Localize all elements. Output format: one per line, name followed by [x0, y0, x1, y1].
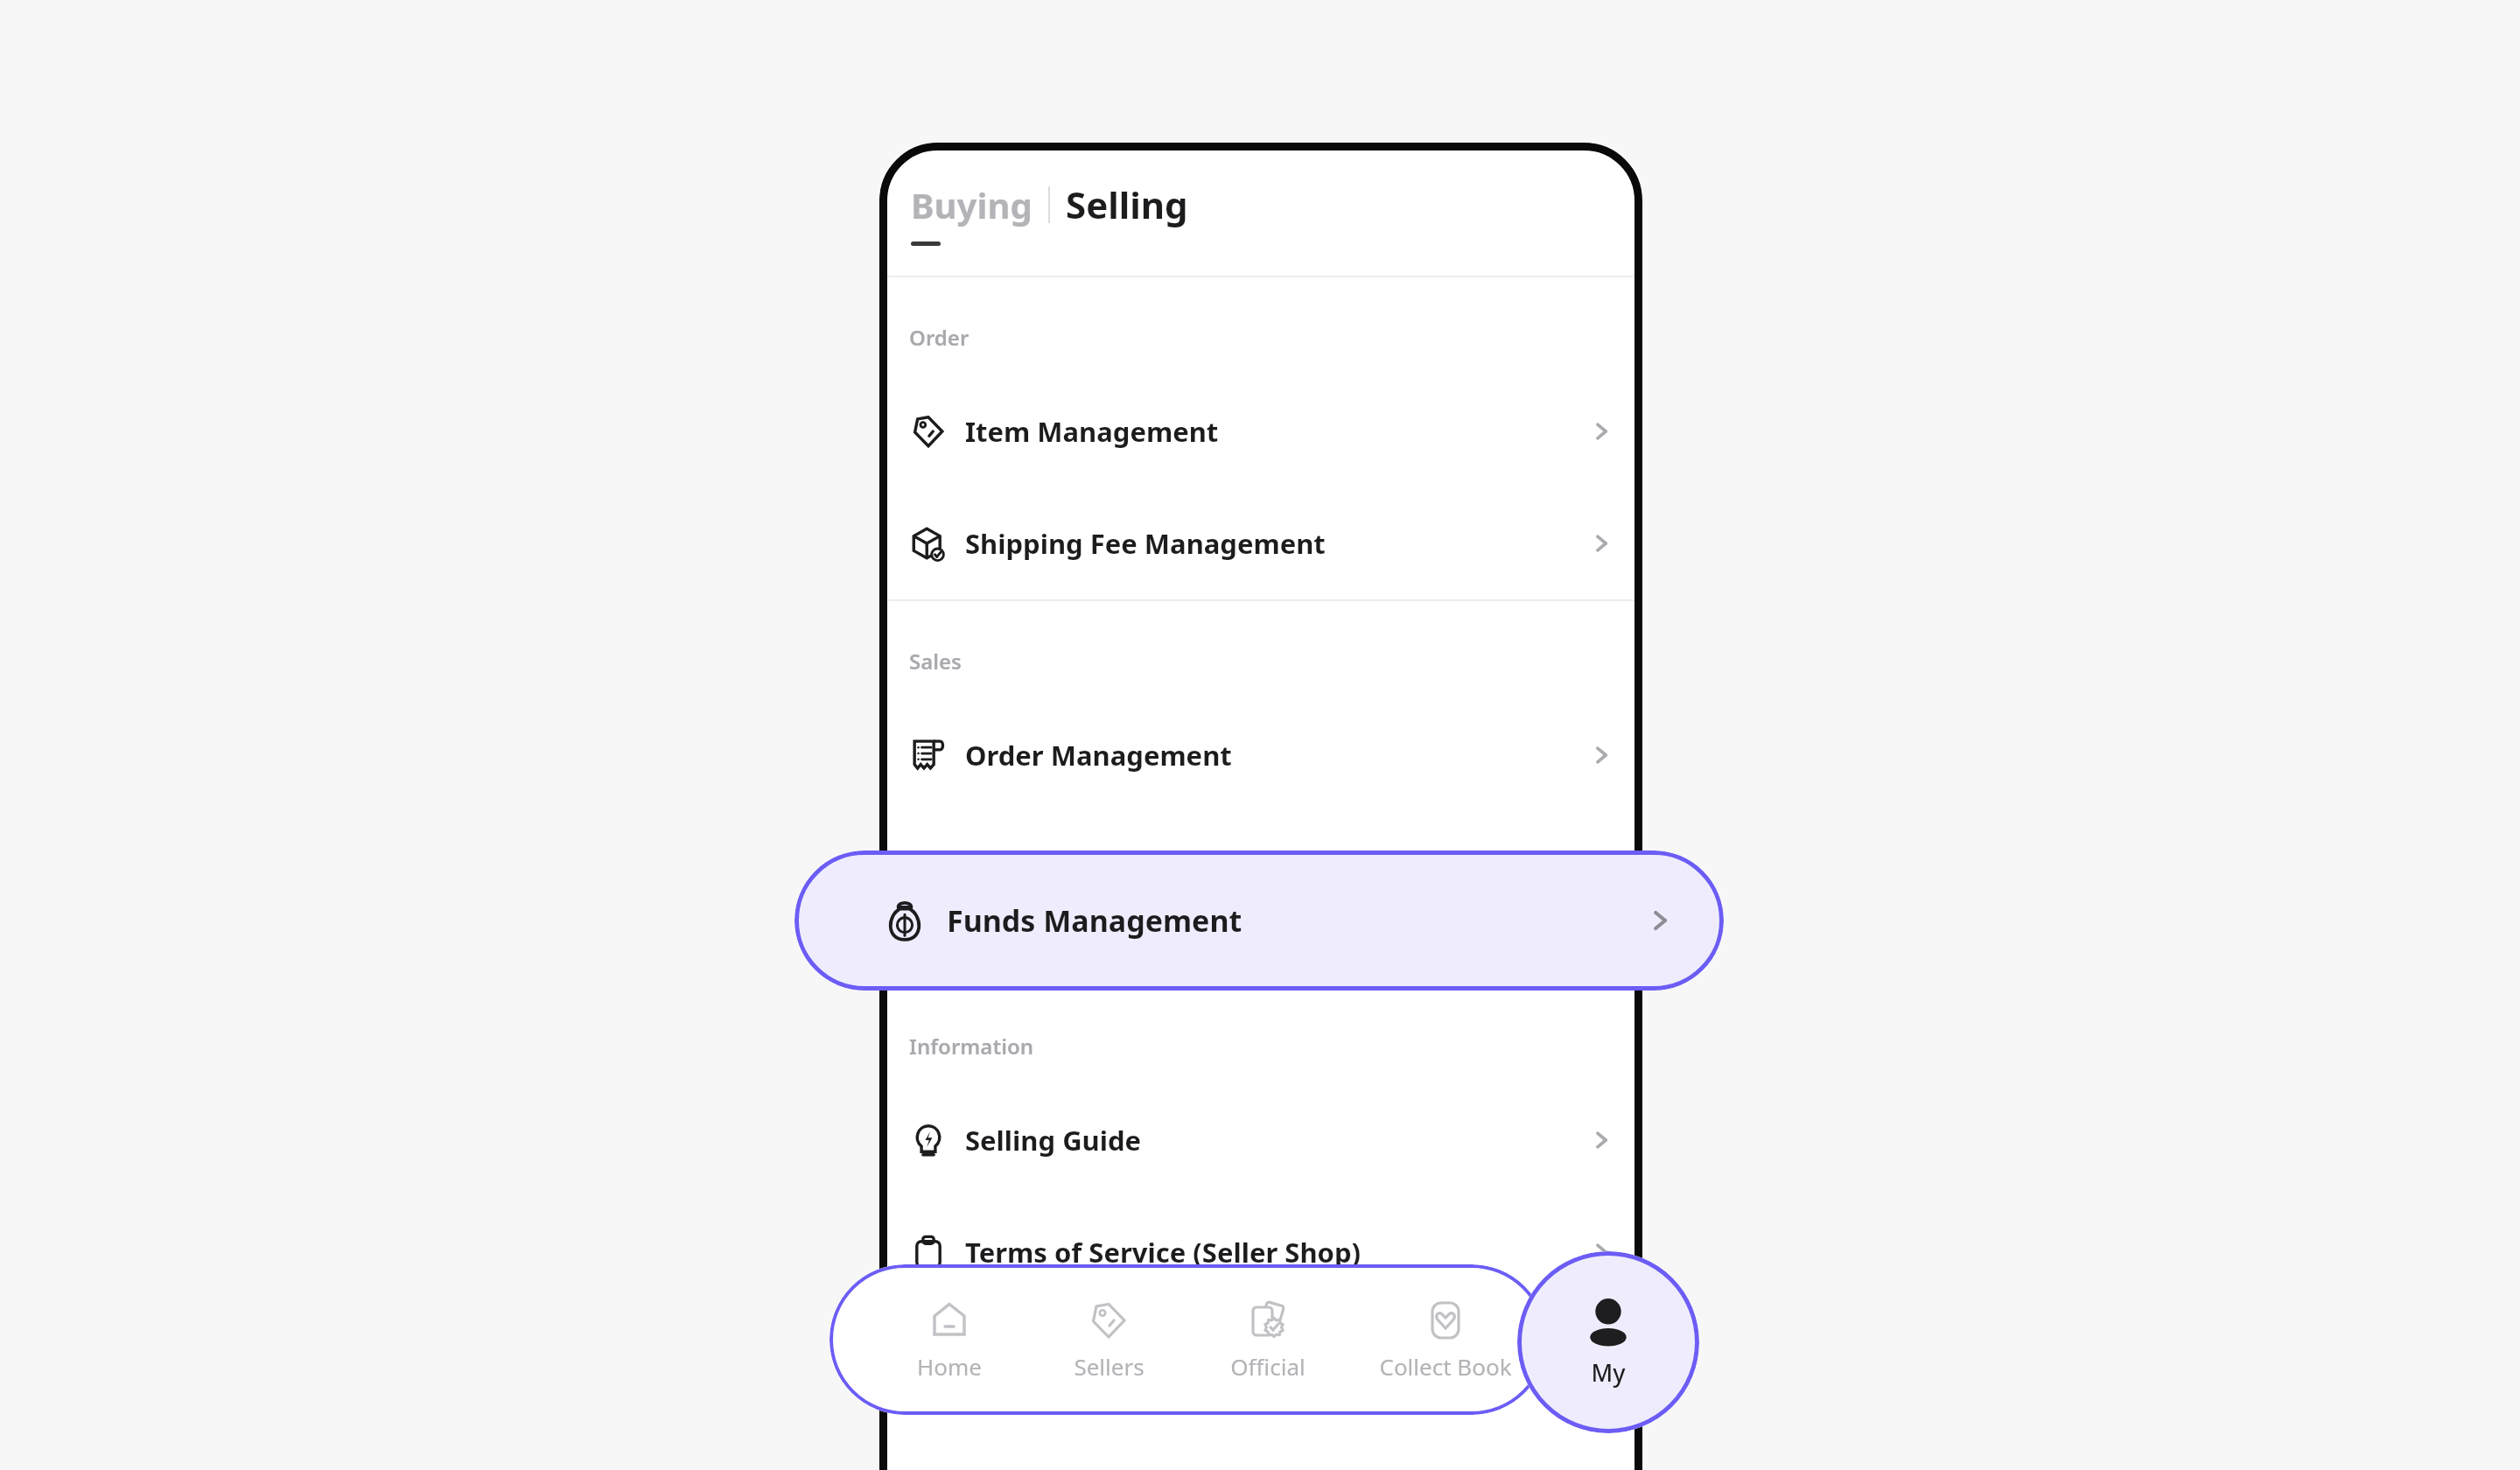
button[interactable]: Official	[1196, 1264, 1340, 1415]
other: Package	[909, 524, 948, 563]
staticText: Order	[909, 323, 969, 352]
other: Home	[927, 1298, 971, 1342]
button[interactable]: Tag	[1037, 1264, 1180, 1415]
button[interactable]: Tag	[879, 406, 1642, 457]
staticText: Order Management	[965, 737, 1232, 773]
staticText: Official	[1230, 1351, 1305, 1382]
other: Official	[1246, 1298, 1290, 1342]
staticText: Sellers	[1074, 1351, 1144, 1382]
button[interactable]: Funds	[794, 850, 1724, 990]
staticText: Refund Management	[965, 910, 1250, 947]
other: Guide	[909, 1121, 948, 1159]
button[interactable]: Terms	[879, 1227, 1642, 1277]
other: Receipt	[909, 736, 948, 774]
other: Collect Book	[1424, 1298, 1467, 1342]
other: Funds	[882, 898, 927, 943]
staticText: Home	[917, 1351, 982, 1382]
staticText: Selling Guide	[965, 1122, 1142, 1158]
staticText: Item Management	[965, 413, 1219, 450]
other: My profile	[1582, 1297, 1634, 1349]
button[interactable]: Selling	[1062, 178, 1192, 231]
staticText: Selling	[1066, 179, 1188, 229]
other: Terms	[909, 1233, 948, 1271]
button[interactable]: Receipt	[879, 730, 1642, 780]
other: Tag	[909, 412, 948, 451]
button[interactable]: My profile	[1517, 1251, 1699, 1433]
staticText: My	[1591, 1356, 1626, 1389]
staticText: Shipping Fee Management	[965, 525, 1326, 562]
button[interactable]: Buying	[907, 179, 1036, 230]
button[interactable]: Package	[879, 518, 1642, 569]
button[interactable]: Refund	[879, 903, 1642, 954]
staticText: Collect Book	[1379, 1351, 1512, 1382]
other: Tag	[1087, 1298, 1130, 1342]
staticText: Buying	[911, 181, 1032, 228]
button[interactable]: Collect Book	[1355, 1264, 1535, 1415]
button[interactable]: Home	[877, 1264, 1021, 1415]
staticText: Sales	[909, 647, 962, 675]
other: Refund	[909, 909, 948, 948]
staticText: Information	[909, 1032, 1034, 1060]
staticText: Terms of Service (Seller Shop)	[965, 1234, 1361, 1270]
button[interactable]: Guide	[879, 1115, 1642, 1165]
staticText: Funds Management	[947, 900, 1242, 941]
